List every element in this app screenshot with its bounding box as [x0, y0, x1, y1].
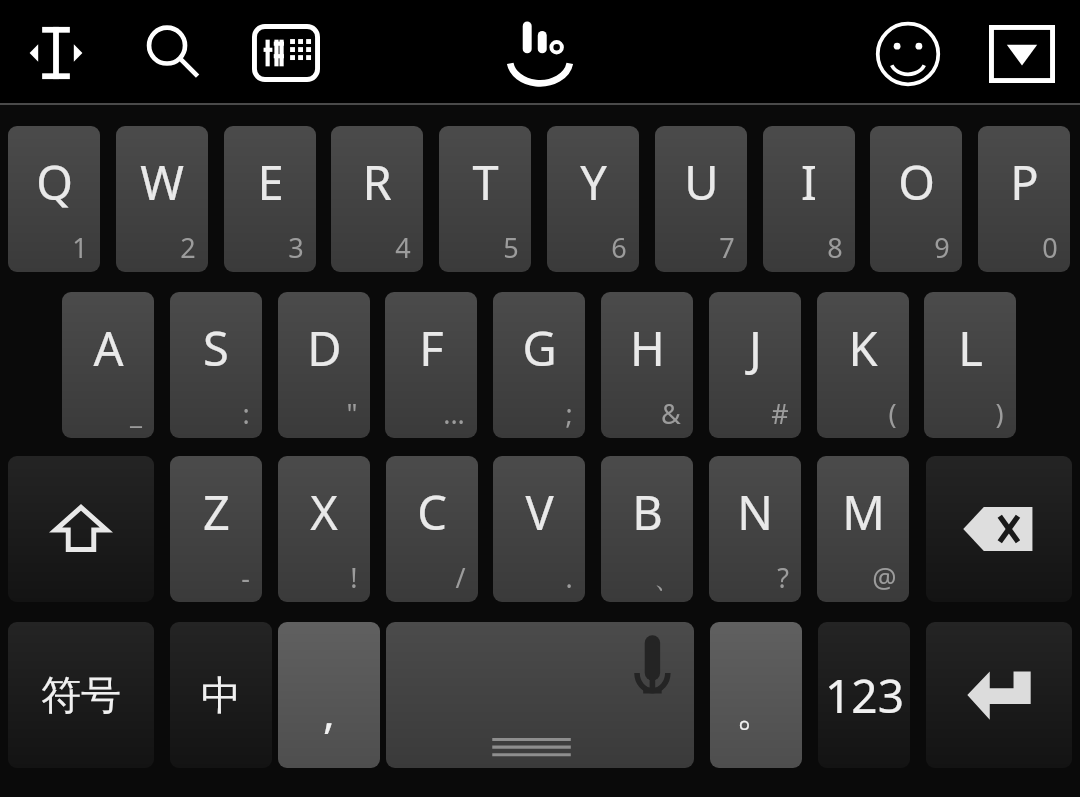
staticText: P [1010, 150, 1039, 214]
button[interactable]: 123 [818, 622, 910, 768]
button[interactable]: Space [386, 622, 694, 768]
button[interactable]: Backspace [926, 456, 1072, 602]
staticText: 123 [825, 664, 904, 727]
staticText: B [632, 480, 663, 544]
staticText: : [242, 395, 250, 432]
staticText: V [525, 480, 554, 544]
button[interactable]: Search [124, 18, 220, 88]
button[interactable]: F [385, 292, 477, 438]
button[interactable]: S [170, 292, 262, 438]
button[interactable]: 符号 [8, 622, 154, 768]
staticText: 4 [395, 229, 411, 266]
button[interactable]: 。 [710, 622, 802, 768]
staticText: ; [565, 395, 573, 432]
button[interactable]: M [817, 456, 909, 602]
staticText: 2 [180, 229, 196, 266]
button[interactable]: Z [170, 456, 262, 602]
button[interactable]: E [224, 126, 316, 272]
staticText: 6 [611, 229, 627, 266]
staticText: N [737, 480, 773, 544]
staticText: R [362, 150, 392, 214]
staticText: O [898, 150, 935, 214]
staticText: F [419, 316, 444, 380]
button[interactable]: Shift [8, 456, 154, 602]
staticText: - [241, 559, 250, 596]
staticText: 符号 [41, 670, 121, 720]
staticText: G [522, 316, 557, 380]
staticText: T [472, 150, 499, 214]
button[interactable]: I [763, 126, 855, 272]
staticText: Q [36, 150, 73, 214]
staticText: S [203, 316, 229, 380]
staticText: & [661, 395, 681, 432]
staticText: 1 [72, 229, 88, 266]
staticText: I [801, 150, 817, 214]
staticText: W [140, 150, 184, 214]
staticText: H [630, 316, 665, 380]
staticText: / [455, 559, 466, 596]
staticText: D [307, 316, 342, 380]
button[interactable]: U [655, 126, 747, 272]
staticText: ... [443, 395, 465, 432]
staticText: A [93, 316, 124, 380]
staticText: U [684, 150, 719, 214]
staticText: 、 [654, 562, 681, 596]
button[interactable]: Emoji [862, 16, 954, 92]
button[interactable]: Hide keyboard [976, 20, 1068, 88]
staticText: L [958, 316, 983, 380]
staticText: 7 [719, 229, 735, 266]
button[interactable]: L [924, 292, 1016, 438]
button[interactable]: TouchPal [492, 12, 588, 92]
staticText: _ [130, 395, 142, 432]
staticText: ) [995, 395, 1004, 432]
staticText: , [323, 681, 335, 741]
button[interactable]: Y [547, 126, 639, 272]
staticText: 0 [1042, 229, 1058, 266]
button[interactable]: K [817, 292, 909, 438]
button[interactable]: J [709, 292, 801, 438]
button[interactable]: T [439, 126, 531, 272]
staticText: M [842, 480, 885, 544]
button[interactable]: Move cursor [8, 18, 104, 88]
staticText: 9 [934, 229, 950, 266]
staticText: X [310, 480, 338, 544]
button[interactable]: P [978, 126, 1070, 272]
button[interactable]: C [386, 456, 478, 602]
staticText: J [749, 316, 762, 380]
button[interactable]: V [493, 456, 585, 602]
button[interactable]: O [870, 126, 962, 272]
staticText: E [257, 150, 284, 214]
button[interactable]: W [116, 126, 208, 272]
button[interactable]: , [278, 622, 380, 768]
staticText: 8 [827, 229, 843, 266]
button[interactable]: Input method [238, 20, 334, 86]
button[interactable]: Q [8, 126, 100, 272]
staticText: . [565, 559, 573, 596]
button[interactable]: Enter [926, 622, 1072, 768]
staticText: K [848, 316, 878, 380]
staticText: " [346, 395, 358, 432]
staticText: 。 [736, 686, 776, 736]
button[interactable]: N [709, 456, 801, 602]
staticText: @ [872, 559, 897, 596]
staticText: 中 [201, 670, 241, 720]
staticText: # [771, 395, 789, 432]
button[interactable]: 中 [170, 622, 272, 768]
staticText: ( [888, 395, 897, 432]
button[interactable]: R [331, 126, 423, 272]
button[interactable]: D [278, 292, 370, 438]
button[interactable]: X [278, 456, 370, 602]
button[interactable]: H [601, 292, 693, 438]
button[interactable]: A [62, 292, 154, 438]
staticText: ! [350, 559, 358, 596]
staticText: 5 [503, 229, 519, 266]
staticText: Z [203, 480, 230, 544]
staticText: ? [777, 559, 789, 596]
staticText: C [417, 480, 447, 544]
button[interactable]: B [601, 456, 693, 602]
button[interactable]: G [493, 292, 585, 438]
staticText: 3 [288, 229, 304, 266]
staticText: Y [580, 150, 607, 214]
